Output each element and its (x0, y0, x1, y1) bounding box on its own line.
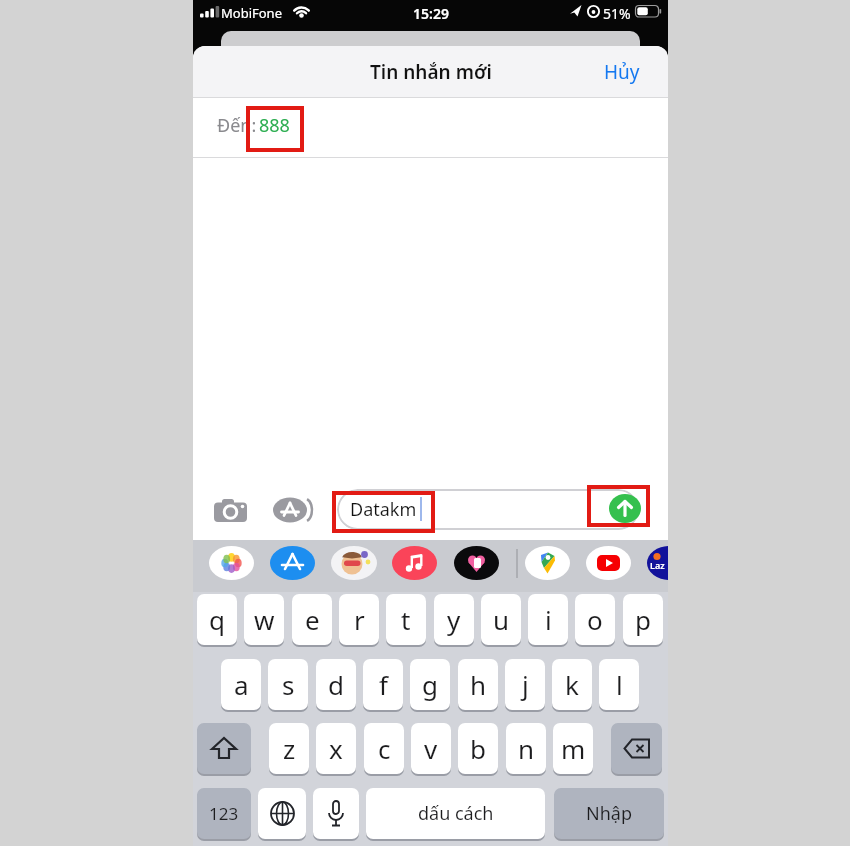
button[interactable]: t (386, 594, 426, 645)
button[interactable] (454, 546, 499, 580)
button[interactable] (214, 498, 248, 524)
staticText: v (424, 731, 438, 766)
button[interactable] (525, 546, 570, 580)
button[interactable]: y (434, 594, 474, 645)
button[interactable] (270, 546, 315, 580)
button[interactable]: e (292, 594, 332, 645)
button[interactable]: n (506, 723, 546, 774)
button[interactable]: j (505, 659, 545, 710)
button[interactable]: p (623, 594, 663, 645)
staticText: j (522, 667, 529, 702)
button[interactable]: x (316, 723, 356, 774)
staticText: c (378, 731, 391, 766)
button[interactable] (392, 546, 437, 580)
staticText: Tin nhắn mới (370, 59, 492, 85)
staticText: r (354, 602, 365, 637)
staticText: Đến: (217, 113, 257, 138)
staticText: w (254, 602, 275, 637)
staticText: p (635, 602, 651, 637)
button[interactable] (337, 489, 639, 530)
staticText: Hủy (604, 59, 640, 85)
staticText: 51% (603, 4, 631, 23)
staticText: i (545, 602, 552, 637)
button[interactable] (313, 788, 359, 839)
staticText: t (401, 602, 411, 637)
button[interactable]: m (553, 723, 593, 774)
staticText: m (561, 731, 586, 766)
staticText: l (616, 667, 623, 702)
button[interactable]: s (268, 659, 308, 710)
button[interactable]: g (410, 659, 450, 710)
staticText: b (470, 731, 486, 766)
button[interactable]: d (316, 659, 356, 710)
button[interactable]: r (339, 594, 379, 645)
staticText: k (565, 667, 579, 702)
button[interactable]: q (197, 594, 237, 645)
button[interactable] (647, 546, 668, 580)
staticText: n (518, 731, 535, 766)
staticText: u (493, 602, 510, 637)
button[interactable] (586, 546, 631, 580)
button[interactable]: i (528, 594, 568, 645)
staticText: 123 (209, 802, 239, 825)
button[interactable] (609, 494, 641, 523)
button[interactable]: dấu cách (366, 788, 545, 839)
button[interactable] (331, 546, 377, 580)
staticText: Laz (650, 559, 665, 571)
staticText: f (379, 667, 388, 702)
button[interactable]: h (458, 659, 498, 710)
staticText: x (329, 731, 343, 766)
staticText: o (587, 602, 603, 637)
button[interactable]: Hủy (593, 46, 651, 97)
button[interactable]: v (411, 723, 451, 774)
staticText: a (234, 667, 249, 702)
staticText: y (447, 602, 461, 637)
staticText: q (209, 602, 225, 637)
button[interactable]: c (364, 723, 404, 774)
button[interactable]: f (363, 659, 403, 710)
staticText: h (470, 667, 487, 702)
staticText: Datakm (350, 497, 417, 522)
staticText: d (328, 667, 344, 702)
button[interactable]: b (458, 723, 498, 774)
button[interactable]: k (552, 659, 592, 710)
staticText: MobiFone (221, 4, 282, 22)
button[interactable] (258, 788, 306, 839)
staticText: z (283, 731, 296, 766)
button[interactable]: u (481, 594, 521, 645)
button[interactable]: z (269, 723, 309, 774)
staticText: g (422, 667, 438, 702)
button[interactable]: w (244, 594, 284, 645)
button[interactable]: a (221, 659, 261, 710)
button[interactable]: l (599, 659, 639, 710)
staticText: e (305, 602, 320, 637)
staticText: 888 (259, 113, 290, 138)
button[interactable] (209, 546, 254, 580)
button[interactable] (611, 723, 662, 774)
staticText: s (282, 667, 295, 702)
button[interactable] (271, 496, 313, 524)
staticText: dấu cách (418, 801, 494, 826)
staticText: Nhập (586, 801, 632, 826)
button[interactable]: 123 (197, 788, 251, 839)
button[interactable] (197, 723, 251, 774)
button[interactable]: Nhập (554, 788, 664, 839)
button[interactable]: o (575, 594, 615, 645)
staticText: 15:29 (413, 4, 449, 23)
